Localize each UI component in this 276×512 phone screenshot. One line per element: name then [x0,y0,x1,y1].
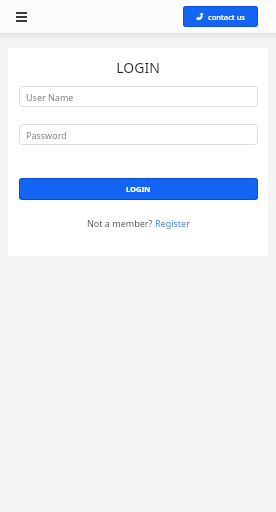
button[interactable]: User Name [19,86,258,107]
staticText: User Name [26,91,74,103]
staticText: Password [26,129,67,141]
staticText: Not a member? [87,217,155,229]
button[interactable]: Password [19,124,258,145]
button[interactable]: Menu [9,5,33,29]
button[interactable]: Register [155,217,190,229]
staticText: contact us [208,12,245,22]
staticText: Register [155,217,190,229]
button[interactable]: contact us [183,6,258,27]
button[interactable]: LOGIN [19,178,258,200]
staticText: LOGIN [8,58,268,77]
staticText: LOGIN [126,184,151,194]
